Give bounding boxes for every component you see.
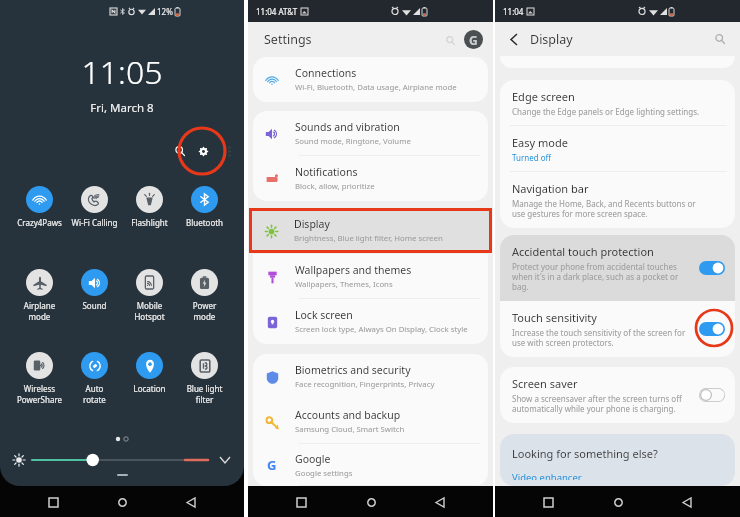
staticText: G — [267, 456, 277, 474]
staticText: PowerShare — [12, 394, 67, 405]
staticText: Google — [295, 452, 331, 466]
button[interactable]: On — [699, 322, 725, 336]
button[interactable]: Bluetooth — [177, 173, 232, 256]
staticText: filter — [177, 394, 232, 405]
staticText: Wallpapers and themes — [295, 263, 412, 277]
button[interactable]: Wi-Fi Calling — [67, 173, 122, 256]
staticText: Navigation bar — [512, 181, 589, 196]
button[interactable]: Accidental touch protection — [500, 235, 735, 301]
button[interactable]: Account — [464, 30, 483, 49]
button[interactable]: On — [699, 261, 725, 275]
staticText: Flashlight — [122, 217, 177, 228]
button[interactable]: Touch sensitivity — [500, 301, 735, 357]
button[interactable]: Search — [170, 141, 190, 161]
staticText: Sounds and vibration — [295, 120, 400, 134]
staticText: Increase the touch sensitivity of the sc… — [512, 327, 687, 348]
staticText: Face recognition, Fingerprints, Privacy — [295, 379, 435, 390]
staticText: G — [469, 32, 478, 48]
staticText: Crazy4Paws — [12, 217, 67, 228]
staticText: Display — [294, 217, 330, 231]
staticText: Wi-Fi Calling — [67, 217, 122, 228]
staticText: Notifications — [295, 165, 358, 179]
staticText: Brightness, Blue light filter, Home scre… — [294, 233, 443, 244]
staticText: Wi-Fi, Bluetooth, Data usage, Airplane m… — [295, 82, 457, 93]
button[interactable]: Wireless — [12, 339, 67, 422]
button[interactable]: Recents — [42, 491, 64, 513]
staticText: Samsung Cloud, Smart Switch — [295, 424, 405, 435]
staticText: Location — [122, 383, 177, 394]
button[interactable]: Back — [429, 491, 451, 513]
staticText: Accounts and backup — [295, 408, 401, 422]
button[interactable]: Back — [505, 30, 523, 48]
button[interactable]: Expand — [216, 451, 234, 469]
staticText: Edge screen — [512, 89, 575, 104]
button[interactable]: Search — [442, 32, 458, 48]
button[interactable]: Mobile — [122, 256, 177, 339]
button[interactable]: Edge screen — [500, 80, 735, 126]
staticText: Screen saver — [512, 376, 578, 391]
staticText: Wireless — [12, 383, 67, 394]
staticText: 11:05 — [0, 50, 244, 94]
button[interactable]: Location — [122, 339, 177, 422]
staticText: Wallpapers, Themes, Icons — [295, 279, 393, 290]
button[interactable]: Easy mode — [500, 126, 735, 172]
staticText: Blue light — [177, 383, 232, 394]
button[interactable]: Crazy4Paws — [12, 173, 67, 256]
button[interactable]: Notifications — [253, 156, 488, 201]
staticText: Mobile — [122, 300, 177, 311]
button[interactable]: Brightness — [32, 451, 208, 469]
staticText: Settings — [264, 31, 312, 48]
button[interactable]: More options — [222, 144, 236, 158]
staticText: Change the Edge panels or Edge lighting … — [512, 106, 702, 117]
staticText: rotate — [67, 394, 122, 405]
staticText: Turned off — [512, 152, 702, 163]
button[interactable]: Power — [177, 256, 232, 339]
button[interactable]: Back — [676, 491, 698, 513]
button[interactable]: Home — [607, 491, 629, 513]
button[interactable]: Sound — [67, 256, 122, 339]
staticText: Biometrics and security — [295, 363, 411, 377]
staticText: 11:04 AT&T — [256, 6, 298, 17]
staticText: Looking for something else? — [512, 446, 658, 461]
button[interactable]: Screen saver — [500, 367, 735, 423]
staticText: Sound — [67, 300, 122, 311]
button[interactable]: Recents — [290, 491, 312, 513]
button[interactable]: Auto — [67, 339, 122, 422]
button[interactable]: Sounds and vibration — [253, 111, 488, 156]
button[interactable]: Connections — [253, 57, 488, 102]
button[interactable]: Home — [111, 491, 133, 513]
staticText: Auto — [67, 383, 122, 394]
button[interactable]: Video enhancer — [512, 471, 582, 480]
button[interactable]: Wallpapers and themes — [253, 254, 488, 299]
button[interactable]: Flashlight — [122, 173, 177, 256]
button[interactable]: Biometrics and security — [253, 354, 488, 399]
button[interactable]: Navigation bar — [500, 172, 735, 228]
button[interactable]: Off — [699, 388, 725, 402]
staticText: Connections — [295, 66, 357, 80]
button[interactable]: Lock screen — [253, 299, 488, 344]
button[interactable]: G — [253, 444, 488, 486]
staticText: Show a screensaver after the screen turn… — [512, 393, 687, 414]
staticText: Bluetooth — [177, 217, 232, 228]
button[interactable]: Search — [712, 31, 728, 47]
staticText: Accidental touch protection — [512, 244, 654, 259]
staticText: 11:04 — [503, 6, 524, 17]
staticText: Airplane — [12, 300, 67, 311]
button[interactable]: Accounts and backup — [253, 399, 488, 444]
staticText: mode — [177, 311, 232, 322]
staticText: Sound mode, Ringtone, Volume — [295, 136, 411, 147]
button[interactable]: Home — [360, 491, 382, 513]
staticText: Block, allow, prioritize — [295, 181, 375, 192]
staticText: Screen lock type, Always On Display, Clo… — [295, 324, 468, 335]
button[interactable]: Back — [180, 491, 202, 513]
button[interactable]: Display — [252, 208, 489, 253]
staticText: 12% — [157, 6, 173, 17]
staticText: Protect your phone from accidental touch… — [512, 261, 687, 292]
staticText: Display — [530, 31, 573, 48]
button[interactable]: Airplane — [12, 256, 67, 339]
button[interactable]: Recents — [537, 491, 559, 513]
staticText: Google settings — [295, 468, 353, 479]
button[interactable]: Blue light — [177, 339, 232, 422]
staticText: Touch sensitivity — [512, 310, 597, 325]
button[interactable]: Settings — [193, 141, 213, 161]
